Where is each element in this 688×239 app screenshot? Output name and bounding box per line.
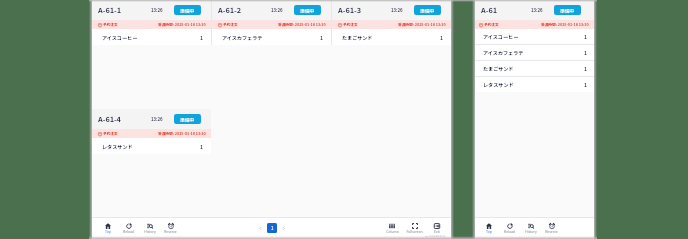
staticText: 1 (584, 65, 588, 72)
staticText: Top (105, 229, 111, 234)
staticText: Top (486, 229, 492, 234)
staticText: 1 (440, 34, 444, 41)
staticText: 13:26 (151, 7, 163, 13)
staticText: 受渡時間: 2025-01-18 13:30 (158, 131, 206, 136)
button[interactable]: Next page (279, 224, 288, 233)
staticText: A-61-4 (98, 114, 121, 125)
staticText: 予約注文 (103, 131, 118, 136)
button[interactable]: A-61-4 (92, 109, 211, 154)
staticText: 1 (200, 34, 204, 41)
staticText: レタスサンド (483, 81, 514, 88)
staticText: たまごサンド (342, 34, 373, 41)
staticText: 1 (584, 81, 588, 88)
staticText: 予約注文 (343, 22, 358, 27)
staticText: 1 (584, 49, 588, 56)
button[interactable]: A-61-1 (92, 0, 211, 45)
staticText: History (144, 229, 156, 234)
staticText: アイスコーヒー (102, 34, 138, 41)
button[interactable]: 準備中 (294, 5, 321, 15)
staticText: A-61 (481, 5, 497, 16)
button[interactable]: 準備中 (414, 5, 441, 15)
staticText: A-61-2 (218, 5, 241, 16)
staticText: Exit (434, 229, 440, 234)
staticText: 受渡時間: 2025-01-18 13:30 (158, 22, 206, 27)
staticText: History (525, 229, 537, 234)
staticText: 1 (271, 225, 274, 232)
staticText: ver 1.0.0 2025-01-18 (425, 234, 446, 237)
button[interactable]: Reload (499, 218, 520, 238)
staticText: アイスカフェラテ (222, 34, 263, 41)
staticText: A-61-3 (338, 5, 361, 16)
staticText: 13:26 (391, 7, 403, 13)
staticText: たまごサンド (483, 65, 514, 72)
button[interactable]: Reserve (160, 218, 181, 238)
staticText: 準備中 (300, 7, 315, 14)
staticText: Fullscreen (406, 229, 423, 234)
button[interactable]: A-61-3 (332, 0, 451, 45)
staticText: Reserve (164, 229, 177, 234)
button[interactable]: A-61-2 (212, 0, 331, 45)
staticText: Reload (504, 229, 515, 234)
button[interactable]: 1 (267, 223, 277, 233)
button[interactable]: Reload (118, 218, 139, 238)
staticText: Reload (123, 229, 134, 234)
button[interactable]: A-61 (475, 0, 594, 92)
staticText: 1 (320, 34, 324, 41)
button[interactable]: 準備中 (174, 114, 201, 124)
staticText: 準備中 (560, 7, 575, 14)
button[interactable]: Exit (426, 218, 448, 238)
staticText: アイスカフェラテ (483, 49, 524, 56)
staticText: 13:26 (271, 7, 283, 13)
button[interactable]: 準備中 (554, 5, 581, 15)
staticText: 予約注文 (223, 22, 238, 27)
staticText: 1 (584, 33, 588, 40)
button[interactable]: History (139, 218, 160, 238)
staticText: アイスコーヒー (483, 33, 519, 40)
button[interactable]: Previous page (256, 224, 265, 233)
staticText: 13:26 (531, 7, 543, 13)
staticText: 受渡時間: 2025-01-18 13:30 (278, 22, 326, 27)
staticText: レタスサンド (102, 143, 133, 150)
staticText: A-61-1 (98, 5, 121, 16)
staticText: 受渡時間: 2025-01-18 13:30 (398, 22, 446, 27)
staticText: 準備中 (180, 7, 195, 14)
staticText: Column (386, 229, 399, 234)
button[interactable]: Column (381, 218, 403, 238)
staticText: 1 (200, 143, 204, 150)
button[interactable]: Top (97, 218, 118, 238)
button[interactable]: Fullscreen (403, 218, 426, 238)
button[interactable]: History (520, 218, 541, 238)
staticText: 準備中 (420, 7, 435, 14)
staticText: 予約注文 (103, 22, 118, 27)
staticText: 予約注文 (484, 22, 499, 27)
button[interactable]: 準備中 (174, 5, 201, 15)
staticText: 受渡時間: 2025-01-18 13:30 (541, 22, 589, 27)
button[interactable]: Reserve (541, 218, 562, 238)
staticText: Reserve (545, 229, 558, 234)
staticText: 13:26 (151, 116, 163, 122)
button[interactable]: Top (478, 218, 499, 238)
staticText: 準備中 (180, 116, 195, 123)
